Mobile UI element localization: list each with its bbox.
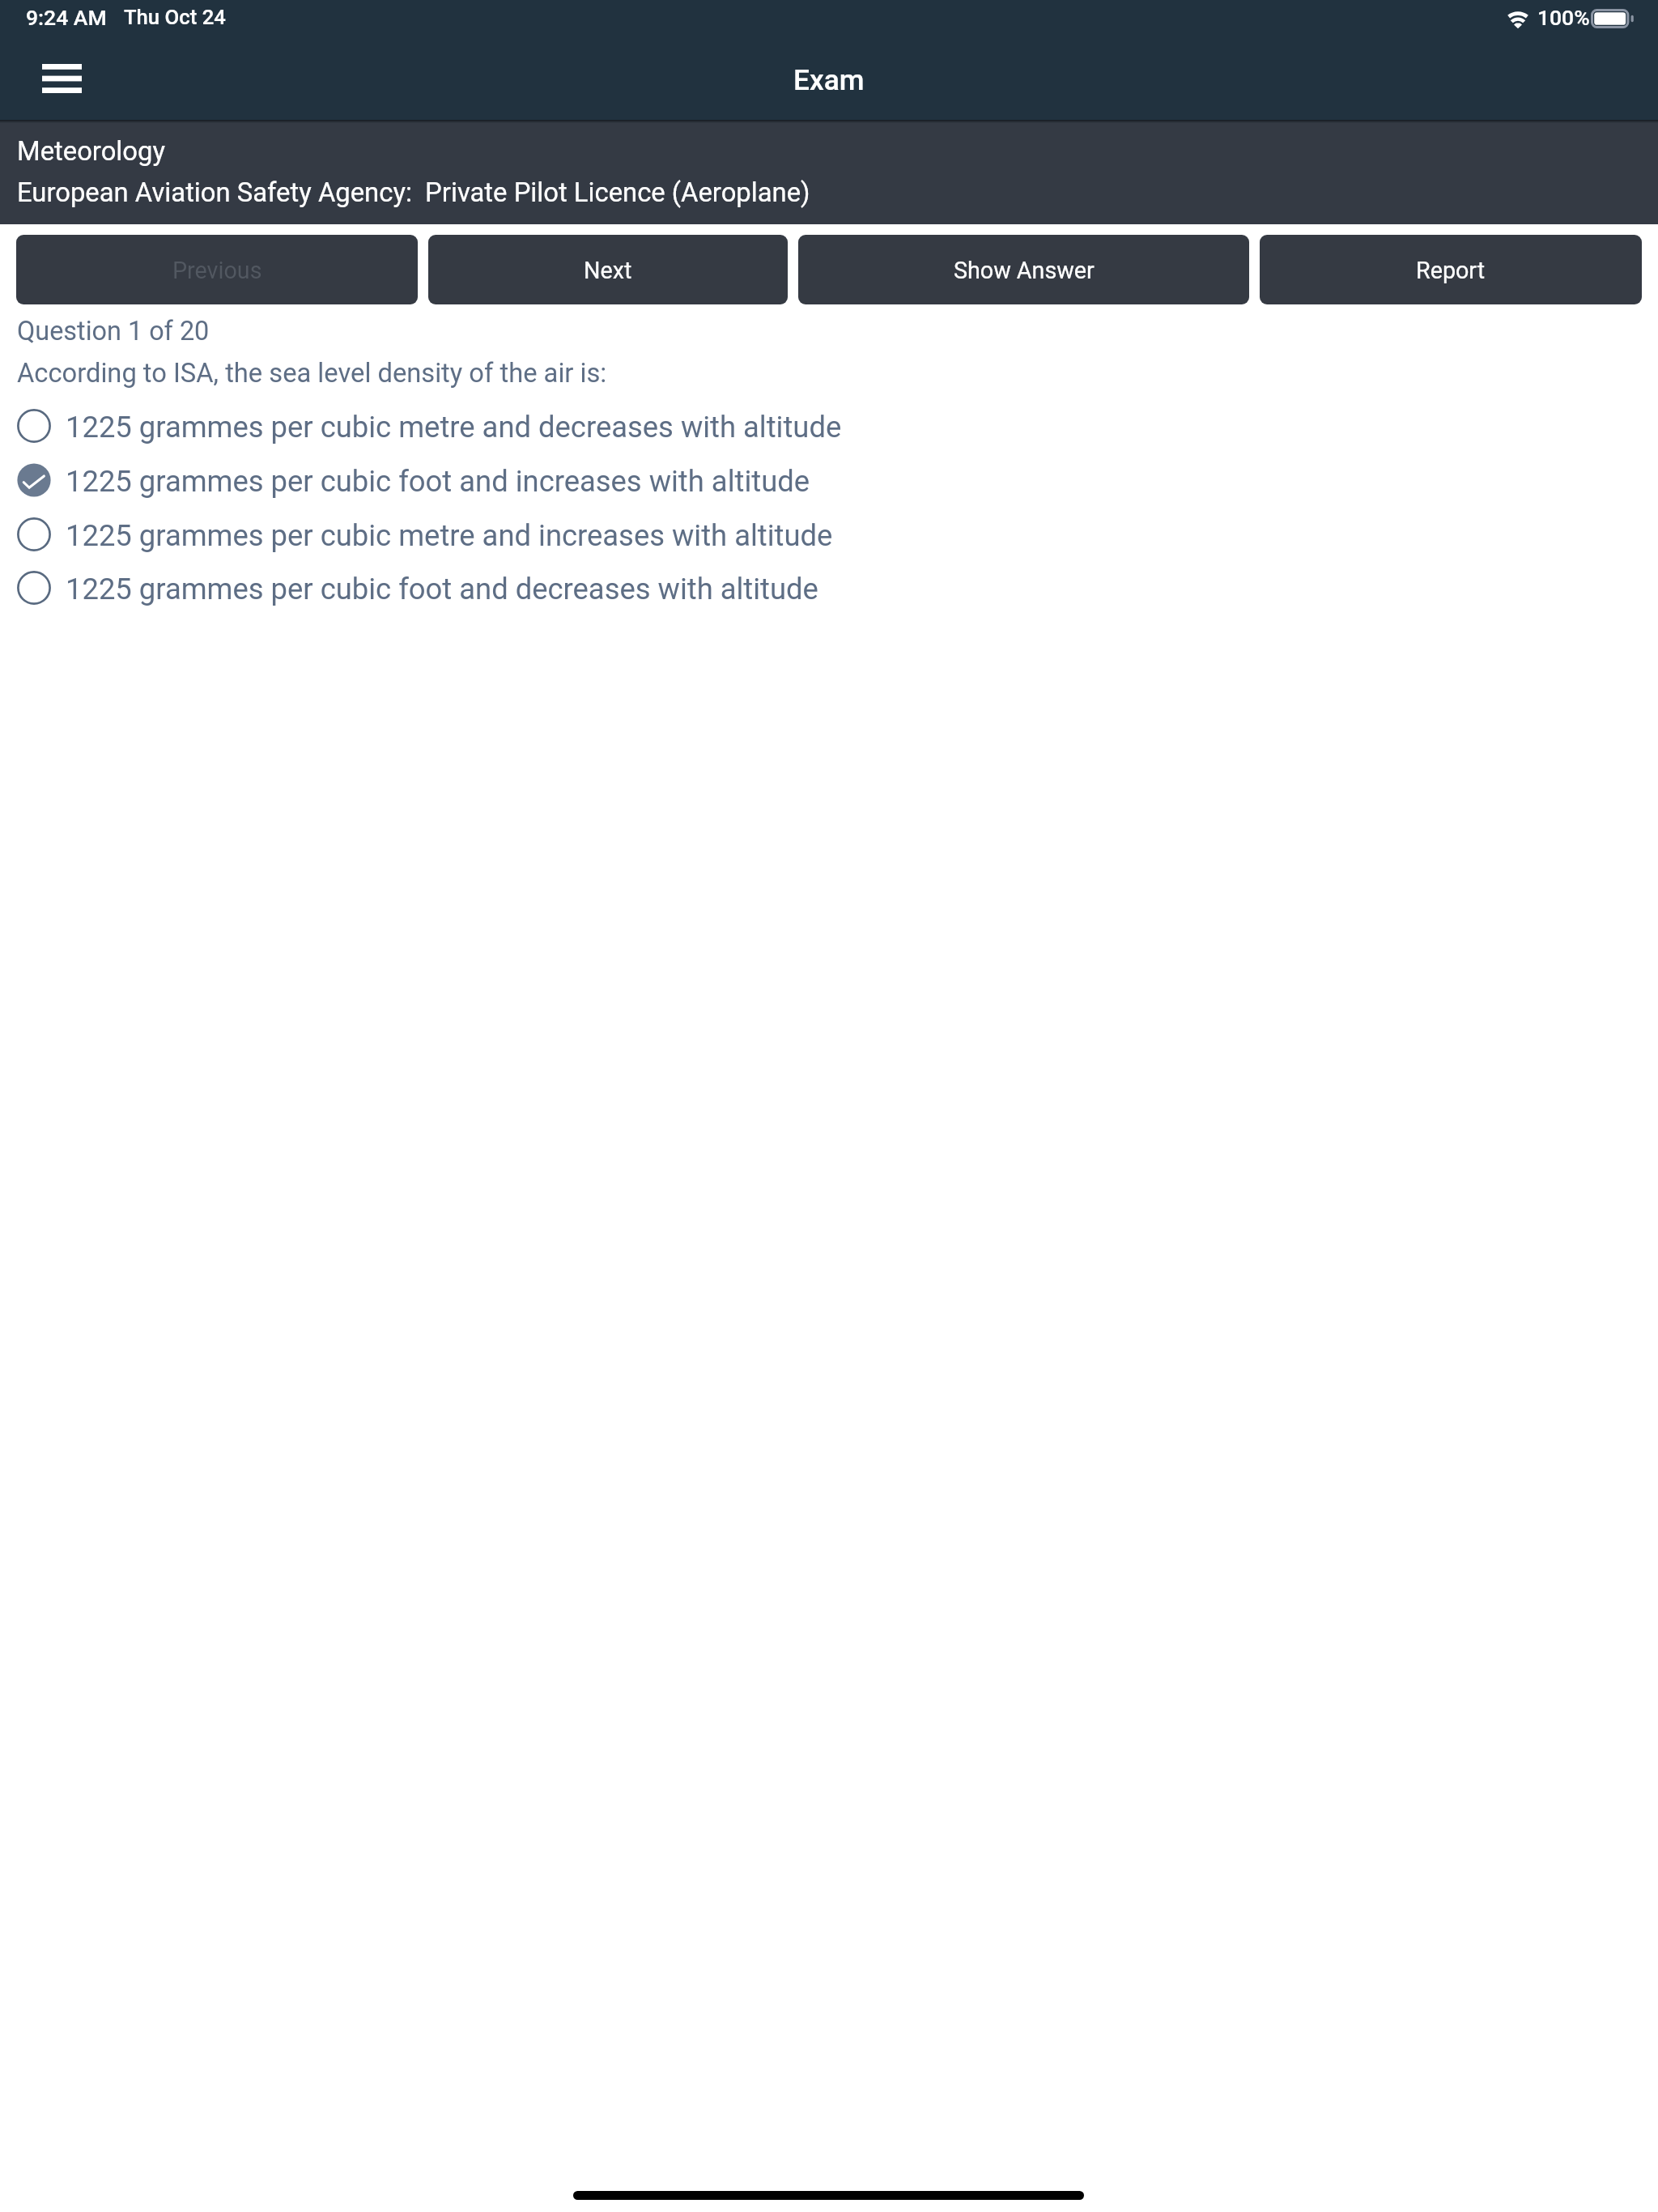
staticText: Meteorology — [17, 136, 165, 167]
staticText: Previous — [172, 257, 262, 284]
button[interactable]: Previous — [16, 235, 418, 304]
staticText: 1225 grammes per cubic foot and decrease… — [66, 572, 818, 606]
button[interactable]: Open navigation menu — [22, 45, 101, 113]
staticText: Exam — [793, 63, 865, 96]
button[interactable]: Next — [428, 235, 788, 304]
staticText: 9:24 AM — [26, 5, 107, 30]
staticText: European Aviation Safety Agency: Private… — [17, 177, 810, 208]
staticText: According to ISA, the sea level density … — [17, 358, 607, 389]
button[interactable]: Report — [1260, 235, 1642, 304]
staticText: Report — [1416, 257, 1486, 284]
button[interactable]: 1225 grammes per cubic metre and increas… — [0, 507, 1658, 561]
staticText: 1225 grammes per cubic metre and increas… — [66, 518, 833, 553]
button[interactable]: 1225 grammes per cubic metre and decreas… — [0, 398, 1658, 453]
staticText: 1225 grammes per cubic foot and increase… — [66, 464, 810, 499]
staticText: 1225 grammes per cubic metre and decreas… — [66, 410, 842, 445]
button[interactable]: 1225 grammes per cubic foot and decrease… — [0, 560, 1658, 615]
staticText: Show Answer — [954, 257, 1095, 284]
button[interactable]: Show Answer — [798, 235, 1249, 304]
staticText: 100% — [1537, 5, 1590, 30]
staticText: Next — [584, 257, 632, 284]
button[interactable]: 1225 grammes per cubic foot and increase… — [0, 453, 1658, 507]
staticText: Thu Oct 24 — [124, 5, 226, 29]
staticText: Question 1 of 20 — [17, 316, 210, 347]
